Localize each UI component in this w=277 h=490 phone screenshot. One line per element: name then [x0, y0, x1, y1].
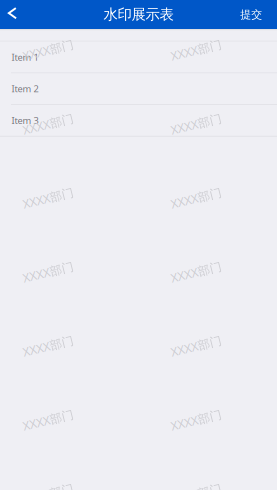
button[interactable]: Item 1: [0, 42, 277, 72]
button[interactable]: Item 3: [0, 105, 277, 136]
staticText: XXXX部门: [170, 190, 222, 206]
staticText: 水印展示表: [103, 5, 173, 23]
staticText: XXXX部门: [22, 42, 74, 58]
button[interactable]: Back: [0, 0, 33, 29]
button[interactable]: 提交: [240, 0, 277, 29]
staticText: XXXX部门: [170, 338, 222, 354]
staticText: XXXX部门: [22, 190, 74, 206]
staticText: XXXX部门: [22, 412, 74, 428]
staticText: XXXX部门: [22, 116, 74, 132]
staticText: XXXX部门: [22, 486, 74, 490]
staticText: XXXX部门: [170, 116, 222, 132]
staticText: XXXX部门: [22, 338, 74, 354]
staticText: XXXX部门: [170, 486, 222, 490]
staticText: XXXX部门: [170, 42, 222, 58]
staticText: XXXX部门: [170, 412, 222, 428]
staticText: XXXX部门: [170, 264, 222, 280]
staticText: Item 2: [11, 82, 38, 95]
staticText: XXXX部门: [22, 264, 74, 280]
staticText: 提交: [240, 8, 262, 21]
staticText: Item 1: [11, 51, 38, 63]
staticText: Item 3: [11, 114, 38, 127]
button[interactable]: Item 2: [0, 73, 277, 104]
